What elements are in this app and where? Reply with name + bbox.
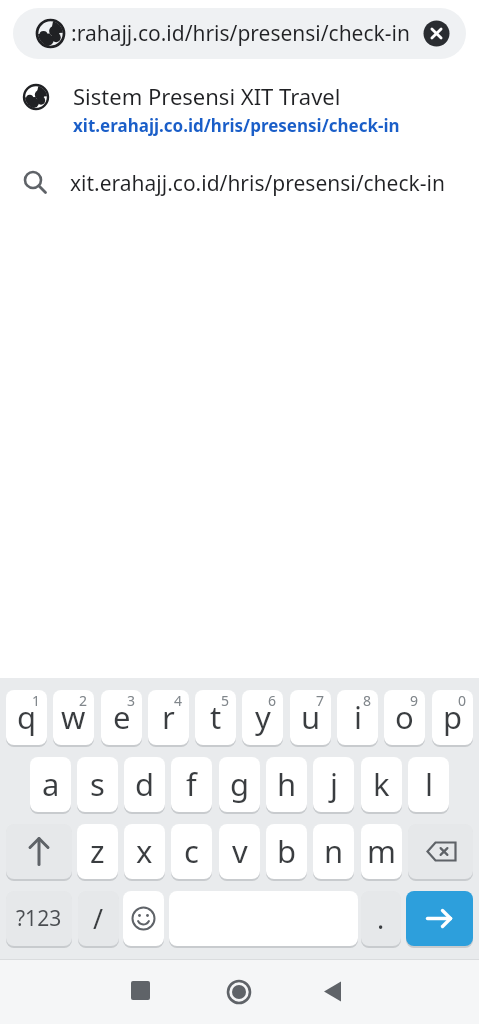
staticText: d — [135, 763, 155, 805]
button[interactable]: q — [6, 690, 47, 745]
button[interactable]: b — [266, 824, 307, 879]
button[interactable]: ?123 — [6, 891, 72, 946]
staticText: 2 — [79, 691, 88, 710]
button[interactable]: i — [337, 690, 378, 745]
staticText: p — [443, 696, 463, 738]
staticText: 1 — [32, 691, 41, 710]
button[interactable]: s — [77, 757, 118, 812]
button[interactable]: y — [242, 690, 283, 745]
button[interactable]: o — [384, 690, 425, 745]
staticText: g — [230, 763, 250, 805]
button[interactable]: c — [171, 824, 212, 879]
staticText: 7 — [316, 691, 325, 710]
button[interactable]: u — [290, 690, 331, 745]
staticText: n — [324, 830, 344, 872]
button[interactable]: h — [266, 757, 307, 812]
button[interactable]: z — [77, 824, 118, 879]
staticText: f — [186, 763, 197, 805]
staticText: ?123 — [16, 904, 62, 933]
button[interactable]: :rahajj.co.id/hris/presensi/check-in — [13, 8, 466, 59]
button[interactable]: m — [361, 824, 402, 879]
staticText: k — [373, 763, 390, 805]
staticText: 8 — [363, 691, 372, 710]
staticText: xit.erahajj.co.id/hris/presensi/check-in — [70, 169, 445, 198]
button[interactable]: t — [195, 690, 236, 745]
staticText: :rahajj.co.id/hris/presensi/check-in — [71, 19, 410, 48]
staticText: j — [330, 763, 338, 805]
staticText: y — [255, 696, 271, 738]
button[interactable]: Sistem Presensi XIT Travel — [0, 74, 479, 142]
button[interactable] — [6, 824, 72, 879]
button[interactable] — [123, 891, 164, 946]
staticText: a — [42, 763, 60, 805]
staticText: v — [232, 830, 248, 872]
staticText: q — [17, 696, 37, 738]
staticText: x — [136, 830, 153, 872]
staticText: i — [354, 696, 362, 738]
button[interactable]: x — [124, 824, 165, 879]
staticText: . — [377, 900, 385, 937]
button[interactable]: f — [171, 757, 212, 812]
staticText: 3 — [127, 691, 136, 710]
button[interactable]: k — [361, 757, 402, 812]
staticText: l — [425, 763, 433, 805]
button[interactable]: p — [432, 690, 473, 745]
staticText: / — [93, 900, 104, 937]
staticText: Sistem Presensi XIT Travel — [73, 81, 341, 111]
button[interactable] — [406, 891, 473, 946]
staticText: r — [162, 696, 175, 738]
staticText: xit.erahajj.co.id/hris/presensi/check-in — [73, 114, 400, 137]
staticText: 5 — [221, 691, 230, 710]
button[interactable]: r — [148, 690, 189, 745]
staticText: u — [301, 696, 321, 738]
button[interactable] — [159, 959, 319, 1024]
button[interactable]: xit.erahajj.co.id/hris/presensi/check-in — [0, 158, 479, 208]
button[interactable]: / — [78, 891, 119, 946]
staticText: o — [395, 696, 414, 738]
staticText: 9 — [410, 691, 419, 710]
staticText: c — [184, 830, 199, 872]
button[interactable]: w — [53, 690, 94, 745]
staticText: h — [277, 763, 297, 805]
button[interactable] — [0, 959, 159, 1024]
staticText: 6 — [268, 691, 277, 710]
button[interactable]: g — [219, 757, 260, 812]
button[interactable]: . — [361, 891, 401, 946]
staticText: w — [61, 696, 86, 738]
staticText: b — [277, 830, 297, 872]
staticText: z — [90, 830, 105, 872]
button[interactable] — [319, 959, 479, 1024]
staticText: m — [367, 830, 396, 872]
button[interactable]: a — [30, 757, 71, 812]
button[interactable] — [408, 824, 473, 879]
staticText: s — [90, 763, 105, 805]
button[interactable]: n — [313, 824, 354, 879]
button[interactable]: j — [313, 757, 354, 812]
button[interactable]: l — [408, 757, 449, 812]
staticText: e — [113, 696, 131, 738]
staticText: t — [210, 696, 222, 738]
button[interactable]: e — [101, 690, 142, 745]
staticText: 0 — [458, 691, 467, 710]
staticText: 4 — [174, 691, 183, 710]
button[interactable]: v — [219, 824, 260, 879]
button[interactable]: d — [124, 757, 165, 812]
